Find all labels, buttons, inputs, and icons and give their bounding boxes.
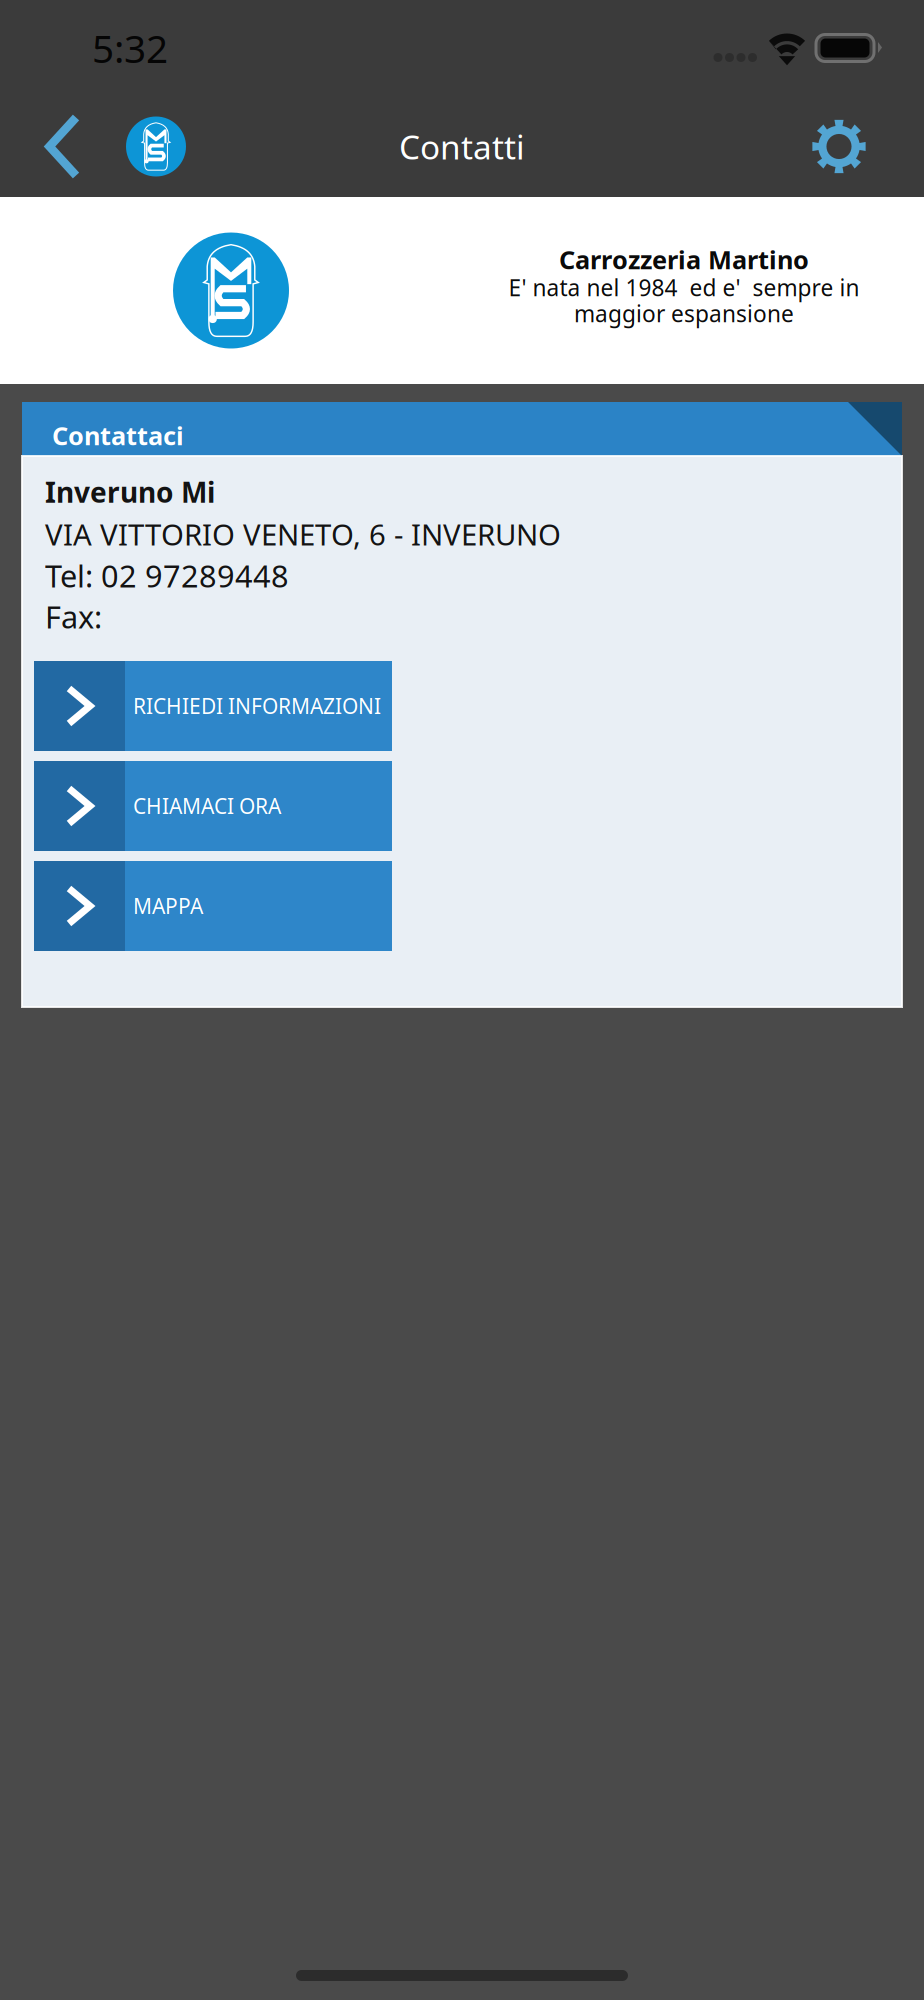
button[interactable]: Indietro bbox=[23, 96, 103, 197]
staticText: Fax: bbox=[45, 596, 102, 637]
staticText: Inveruno Mi bbox=[45, 473, 215, 511]
staticText: E' nata nel 1984 ed e' sempre in bbox=[508, 272, 859, 302]
staticText: MAPPA bbox=[133, 892, 203, 920]
button[interactable]: CHIAMACI ORA bbox=[34, 761, 392, 851]
staticText: Tel: 02 97289448 bbox=[45, 555, 289, 596]
button[interactable]: RICHIEDI INFORMAZIONI bbox=[34, 661, 392, 751]
button[interactable]: Home bbox=[120, 96, 192, 197]
staticText: Contattaci bbox=[52, 419, 184, 452]
staticText: RICHIEDI INFORMAZIONI bbox=[133, 692, 381, 720]
staticText: CHIAMACI ORA bbox=[133, 792, 281, 820]
button[interactable]: MAPPA bbox=[34, 861, 392, 951]
staticText: Contatti bbox=[399, 124, 525, 169]
staticText: 5:32 bbox=[92, 22, 168, 74]
button[interactable]: Impostazioni bbox=[784, 96, 894, 197]
staticText: maggior espansione bbox=[574, 298, 794, 328]
staticText: Carrozzeria Martino bbox=[559, 243, 809, 276]
staticText: VIA VITTORIO VENETO, 6 - INVERUNO bbox=[45, 514, 561, 553]
